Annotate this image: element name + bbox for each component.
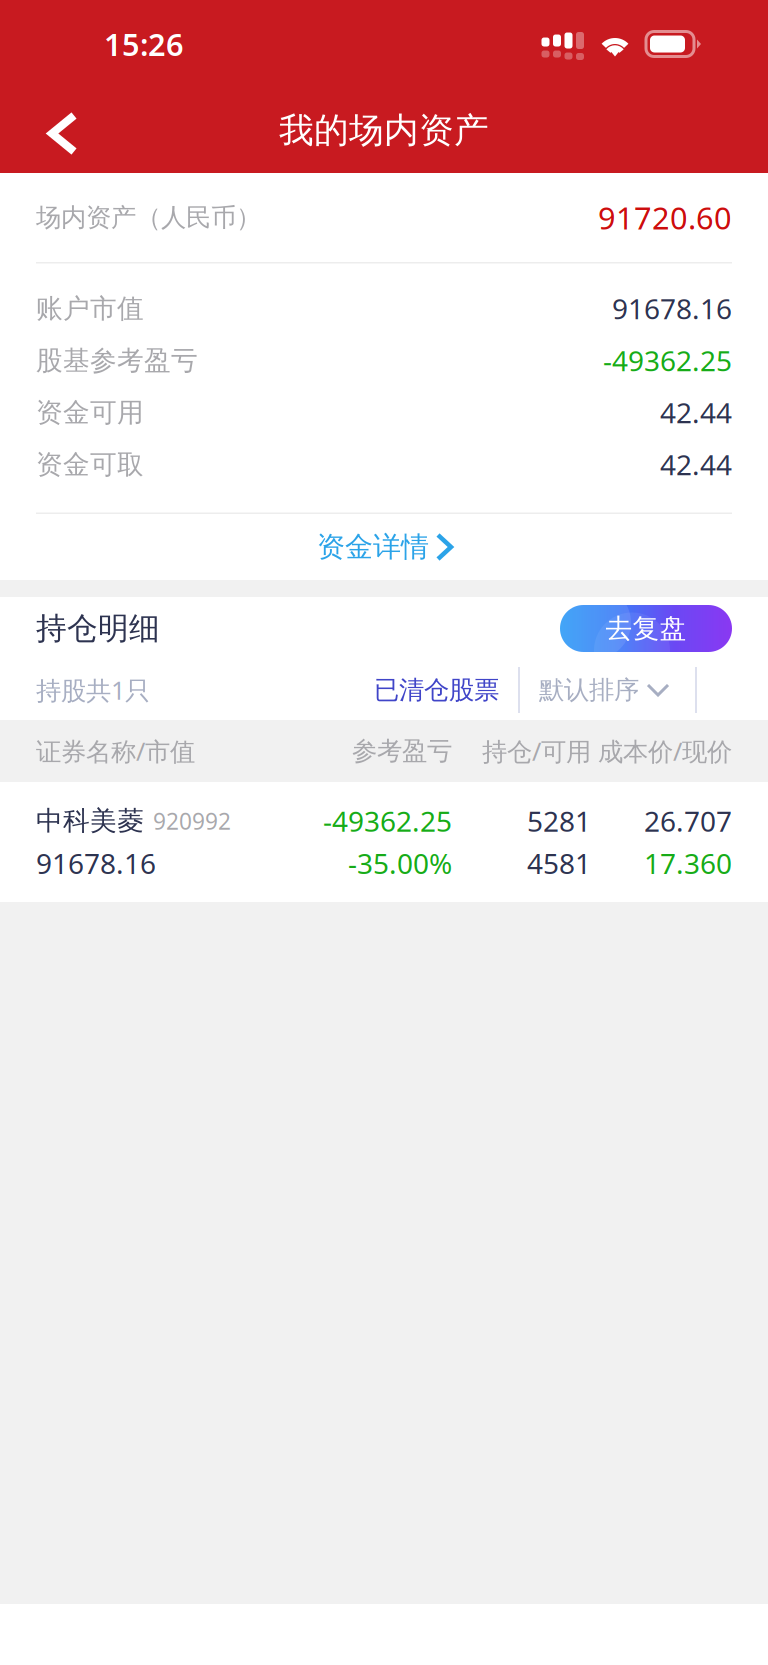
staticText: 17.360 [644,844,732,882]
staticText: 中科美菱 [36,804,144,837]
staticText: 持仓明细 [36,610,160,647]
staticText: 场内资产（人民币） [36,202,261,233]
staticText: 91678.16 [36,844,156,882]
staticText: -49362.25 [603,342,732,379]
staticText: 资金详情 [317,530,429,564]
staticText: 15:26 [104,24,184,64]
staticText: -35.00% [348,844,452,882]
staticText: 股基参考盈亏 [36,344,198,377]
staticText: 资金可用 [36,396,144,429]
staticText: 920992 [153,806,231,836]
button[interactable]: 默认排序 [520,674,695,705]
staticText: 默认排序 [539,674,639,705]
staticText: 证券名称/市值 [36,734,195,768]
staticText: 账户市值 [36,292,144,325]
staticText: 持仓/可用 [482,734,591,768]
staticText: 91720.60 [598,197,732,238]
staticText: 5281 [527,802,591,839]
button[interactable]: 中科美菱 [0,782,768,902]
staticText: -49362.25 [323,802,452,839]
staticText: 我的场内资产 [279,109,489,152]
staticText: 持股共1只 [36,673,150,707]
staticText: 91678.16 [612,290,732,327]
staticText: 参考盈亏 [352,735,452,766]
staticText: 资金可取 [36,448,144,481]
staticText: 26.707 [644,802,732,839]
staticText: 42.44 [660,446,732,483]
staticText: 去复盘 [605,612,686,645]
staticText: 4581 [527,844,591,882]
button[interactable]: 已清仓股票 [374,674,518,705]
staticText: 成本价/现价 [598,734,732,768]
staticText: 42.44 [660,394,732,431]
button[interactable]: Back [28,92,98,168]
button[interactable]: 资金详情 [36,514,732,580]
staticText: 已清仓股票 [374,674,499,705]
button[interactable]: 去复盘 [560,605,732,652]
